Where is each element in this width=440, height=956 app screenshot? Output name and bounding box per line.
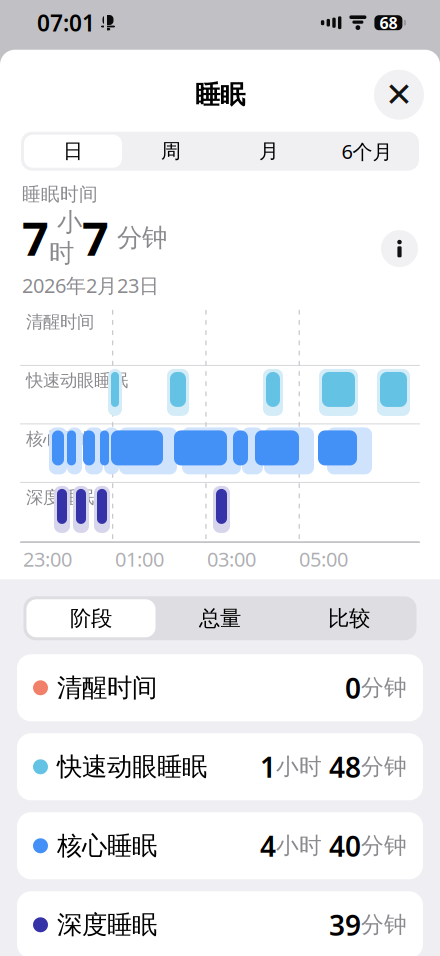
button[interactable]: 信息 bbox=[381, 230, 418, 267]
staticText: 01:00 bbox=[115, 546, 164, 572]
button[interactable]: 清醒时间 bbox=[17, 654, 423, 721]
staticText: ✕ bbox=[385, 76, 413, 114]
staticText: 月 bbox=[259, 139, 279, 163]
staticText: 日 bbox=[63, 139, 83, 163]
button[interactable]: 阶段 bbox=[26, 599, 155, 637]
staticText: 核心睡眠 bbox=[26, 428, 94, 450]
staticText: 小时 bbox=[276, 753, 329, 781]
staticText: 分钟 bbox=[361, 674, 407, 702]
staticText: 68 bbox=[379, 12, 397, 33]
staticText: 7 bbox=[82, 207, 109, 269]
staticText: 深度睡眠 bbox=[26, 487, 94, 508]
staticText: 快速动眼睡眠 bbox=[26, 370, 128, 391]
staticText: 快速动眼睡眠 bbox=[57, 751, 207, 782]
button[interactable]: 核心睡眠 bbox=[17, 812, 423, 879]
staticText: 总量 bbox=[199, 605, 241, 631]
button[interactable]: 日 bbox=[24, 135, 122, 168]
staticText: 周 bbox=[161, 139, 181, 163]
button[interactable]: 月 bbox=[220, 135, 318, 168]
staticText: 睡眠 bbox=[195, 79, 245, 110]
staticText: 48 bbox=[329, 748, 361, 785]
staticText: 39 bbox=[329, 906, 361, 943]
staticText: 分钟 bbox=[361, 832, 407, 860]
staticText: 23:00 bbox=[23, 546, 72, 572]
staticText: 1 bbox=[260, 748, 276, 785]
staticText: 比较 bbox=[328, 605, 370, 631]
button[interactable]: 深度睡眠 bbox=[17, 891, 423, 956]
button[interactable]: 6个月 bbox=[318, 135, 416, 168]
staticText: 清醒时间 bbox=[57, 672, 157, 703]
staticText: 7 bbox=[22, 207, 49, 269]
staticText: 睡眠时间 bbox=[22, 183, 98, 206]
staticText: 6个月 bbox=[341, 138, 392, 164]
staticText: 核心睡眠 bbox=[57, 830, 157, 861]
button[interactable]: 关闭 bbox=[374, 70, 424, 120]
staticText: 阶段 bbox=[70, 605, 112, 631]
button[interactable]: 比较 bbox=[284, 599, 413, 637]
staticText: 05:00 bbox=[299, 546, 348, 572]
staticText: 小时 bbox=[49, 207, 82, 269]
staticText: 清醒时间 bbox=[26, 311, 94, 333]
staticText: 分钟 bbox=[361, 911, 407, 939]
button[interactable]: 周 bbox=[122, 135, 220, 168]
staticText: 4 bbox=[260, 827, 276, 864]
button[interactable]: 快速动眼睡眠 bbox=[17, 733, 423, 800]
staticText: 小时 bbox=[276, 832, 329, 860]
staticText: 40 bbox=[329, 827, 361, 864]
staticText: 07:01 bbox=[37, 8, 95, 38]
button[interactable]: 总量 bbox=[155, 599, 284, 637]
staticText: 分钟 bbox=[361, 753, 407, 781]
staticText: 分钟 bbox=[109, 222, 167, 253]
staticText: 2026年2月23日 bbox=[22, 272, 159, 298]
staticText: 0 bbox=[345, 669, 361, 706]
staticText: 深度睡眠 bbox=[57, 909, 157, 940]
staticText: 03:00 bbox=[207, 546, 256, 572]
